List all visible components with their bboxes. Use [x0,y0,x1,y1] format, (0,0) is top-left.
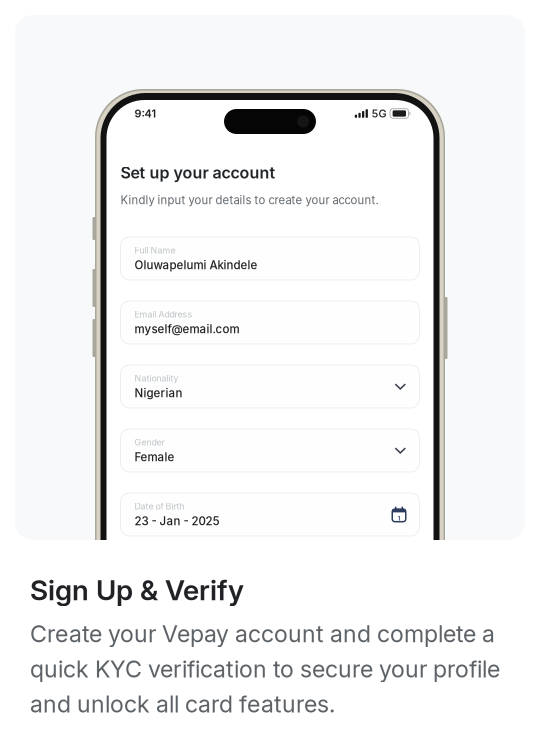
staticText: 23 - Jan - 2025 [134,514,219,528]
staticText: Date of Birth [134,501,184,512]
button[interactable]: Gender [120,429,419,472]
button[interactable]: Email Address [120,301,419,344]
staticText: Full Name [134,245,175,256]
staticText: Create your Vepay account and complete a… [30,620,500,718]
button[interactable]: Full Name [120,237,419,280]
staticText: 5G [372,107,387,120]
staticText: 1 [397,514,400,522]
staticText: Oluwapelumi Akindele [134,258,257,272]
staticText: Kindly input your details to create your… [120,193,378,207]
staticText: Sign Up & Verify [30,573,244,607]
button[interactable]: Nationality [120,365,419,408]
staticText: myself@email.com [134,322,239,336]
button[interactable]: Date of Birth [120,493,419,536]
staticText: Email Address [134,309,192,320]
button[interactable]: Sign Up & Verify [30,573,244,607]
staticText: Nationality [134,373,178,384]
staticText: Set up your account [120,163,275,182]
staticText: 9:41 [134,107,156,120]
staticText: Gender [134,437,164,448]
staticText: Female [134,450,174,464]
staticText: Nigerian [134,386,182,400]
